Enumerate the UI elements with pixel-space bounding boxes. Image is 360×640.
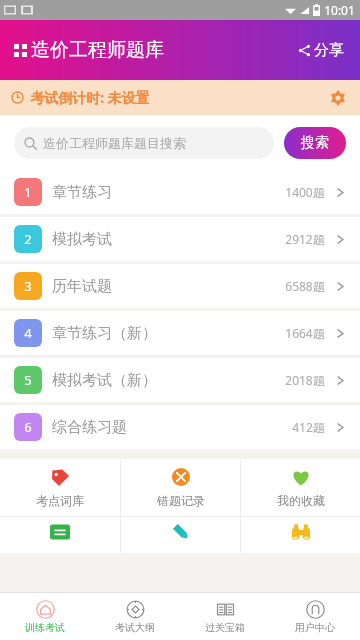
staticText: 过关宝箱 <box>205 621 245 634</box>
staticText: 综合练习题 <box>52 418 127 437</box>
button[interactable]: 分享 <box>294 35 348 66</box>
staticText: 1 <box>24 183 32 201</box>
staticText: 用户中心 <box>295 621 335 634</box>
button[interactable]: 训练考试 <box>0 593 90 640</box>
staticText: 章节练习（新） <box>52 324 157 343</box>
staticText: 训练考试 <box>25 621 65 634</box>
button[interactable]: 4 <box>0 311 360 355</box>
button[interactable]: 3 <box>0 264 360 308</box>
button[interactable]: 错题记录 <box>121 459 240 516</box>
staticText: 2 <box>24 230 32 248</box>
staticText: 1664题 <box>285 325 325 341</box>
button[interactable]: 考点词库 <box>0 459 120 516</box>
staticText: 2912题 <box>285 231 325 247</box>
button[interactable]: 搜索 <box>284 127 346 159</box>
staticText: 造价工程师题库题目搜索 <box>43 135 186 151</box>
button[interactable]: Notes <box>0 517 120 553</box>
button[interactable]: Settings <box>324 84 352 112</box>
staticText: 考试倒计时: 未设置 <box>30 88 150 107</box>
button[interactable]: Search <box>241 517 360 553</box>
staticText: 我的收藏 <box>277 493 325 508</box>
staticText: 2018题 <box>285 372 325 388</box>
staticText: 10:01 <box>324 2 355 18</box>
button[interactable]: 过关宝箱 <box>180 593 270 640</box>
staticText: 1400题 <box>285 184 325 200</box>
staticText: 412题 <box>292 419 325 435</box>
staticText: 4 <box>24 324 32 342</box>
button[interactable]: 造价工程师题库题目搜索 <box>14 127 274 159</box>
staticText: 章节练习 <box>52 183 112 202</box>
staticText: 分享 <box>314 41 344 60</box>
button[interactable]: 考试大纲 <box>90 593 180 640</box>
button[interactable]: 我的收藏 <box>241 459 360 516</box>
staticText: 错题记录 <box>157 493 205 508</box>
button[interactable]: 5 <box>0 358 360 402</box>
button[interactable]: 6 <box>0 405 360 449</box>
staticText: 6 <box>24 418 32 436</box>
staticText: 考试大纲 <box>115 621 155 634</box>
button[interactable]: 用户中心 <box>270 593 360 640</box>
staticText: 搜索 <box>301 134 329 152</box>
staticText: 模拟考试（新） <box>52 371 157 390</box>
staticText: 6588题 <box>285 278 325 294</box>
button[interactable]: 2 <box>0 217 360 261</box>
staticText: 模拟考试 <box>52 230 112 249</box>
button[interactable]: Edit <box>121 517 240 553</box>
staticText: 3 <box>24 277 32 295</box>
staticText: 考点词库 <box>36 493 84 508</box>
staticText: 历年试题 <box>52 277 112 296</box>
button[interactable]: 1 <box>0 170 360 214</box>
staticText: 造价工程师题库 <box>31 38 164 62</box>
staticText: 5 <box>24 371 32 389</box>
